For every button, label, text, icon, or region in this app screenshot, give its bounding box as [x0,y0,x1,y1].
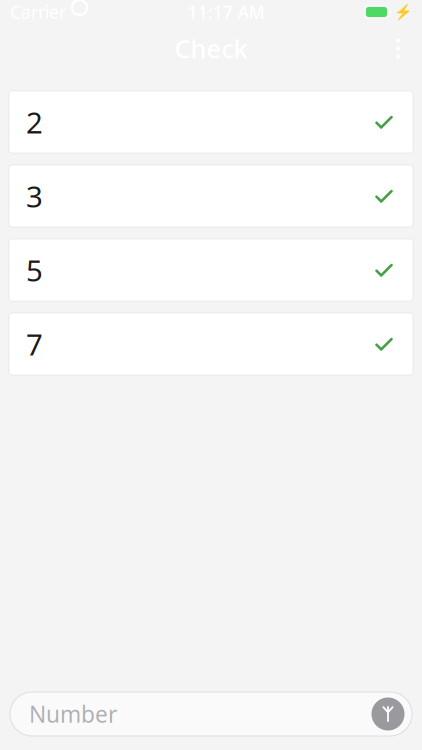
button[interactable]: 7 [9,313,413,375]
staticText: 3 [26,176,43,215]
button[interactable]: 2 [9,91,413,153]
staticText: Number [29,699,117,729]
button[interactable]: Submit number [368,694,408,734]
staticText: 7 [26,324,43,363]
button[interactable]: 5 [9,239,413,301]
button[interactable]: 3 [9,165,413,227]
staticText: 5 [26,250,43,289]
staticText: 2 [26,102,43,141]
staticText: Carrier [10,0,66,23]
staticText: ⚡ [394,4,412,20]
staticText: Check [174,32,247,65]
staticText: 11:17 AM [188,0,265,23]
